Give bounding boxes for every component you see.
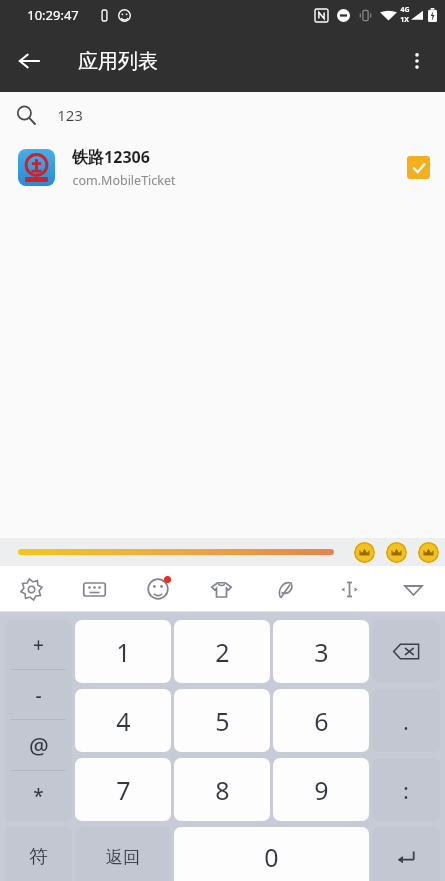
button[interactable]: 符 xyxy=(5,827,72,881)
staticText: 5 xyxy=(215,704,230,738)
staticText: @ xyxy=(29,730,49,760)
button[interactable]: Settings xyxy=(0,566,63,612)
button[interactable]: 2 xyxy=(174,620,270,683)
button[interactable]: 6 xyxy=(273,689,369,752)
button[interactable]: - xyxy=(5,670,72,719)
staticText: 4 xyxy=(116,704,131,738)
staticText: * xyxy=(33,783,44,809)
button[interactable]: + xyxy=(5,620,72,669)
button[interactable]: Reward xyxy=(418,542,439,563)
staticText: 应用列表 xyxy=(78,49,158,74)
button[interactable]: Keyboard layout xyxy=(63,566,126,612)
staticText: 6 xyxy=(314,704,329,738)
staticText: 7 xyxy=(116,773,131,807)
button[interactable]: Selected xyxy=(398,147,438,187)
staticText: 符 xyxy=(29,845,48,869)
staticText: 123 xyxy=(57,105,83,125)
button[interactable]: Enter xyxy=(372,827,440,881)
staticText: 铁路12306 xyxy=(72,146,150,168)
staticText: 2 xyxy=(215,635,230,669)
button[interactable]: 5 xyxy=(174,689,270,752)
button[interactable]: 返回 xyxy=(75,827,171,881)
button[interactable]: Hide keyboard xyxy=(381,566,445,612)
staticText: : xyxy=(403,775,409,805)
button[interactable]: 4 xyxy=(75,689,171,752)
button[interactable]: Theme xyxy=(189,566,253,612)
button[interactable]: . xyxy=(372,689,440,752)
button[interactable]: Reward xyxy=(386,542,407,563)
button[interactable]: 0 xyxy=(174,827,369,881)
button[interactable]: 3 xyxy=(273,620,369,683)
staticText: com.MobileTicket xyxy=(72,172,176,189)
button[interactable]: * xyxy=(5,771,72,821)
staticText: 1X xyxy=(400,15,409,25)
button[interactable]: Move cursor xyxy=(317,566,381,612)
button[interactable]: : xyxy=(372,758,440,821)
button[interactable]: 铁路12306 xyxy=(0,138,445,196)
button[interactable]: @ xyxy=(5,720,72,770)
staticText: . xyxy=(403,706,409,736)
staticText: 1 xyxy=(116,635,131,669)
button[interactable]: Back xyxy=(9,41,49,81)
staticText: + xyxy=(33,632,44,658)
staticText: 9 xyxy=(314,773,329,807)
staticText: - xyxy=(35,682,42,708)
button[interactable]: 9 xyxy=(273,758,369,821)
button[interactable]: 1 xyxy=(75,620,171,683)
staticText: 返回 xyxy=(106,847,140,868)
staticText: 8 xyxy=(215,773,230,807)
button[interactable]: 123 xyxy=(0,92,445,138)
button[interactable]: Backspace xyxy=(372,620,440,683)
staticText: 4G xyxy=(400,5,410,15)
button[interactable]: Reward xyxy=(354,542,375,563)
staticText: 0 xyxy=(264,840,279,874)
button[interactable]: More options xyxy=(397,41,437,81)
staticText: 10:29:47 xyxy=(27,6,79,24)
button[interactable]: Emoji xyxy=(126,566,189,612)
button[interactable]: Handwriting xyxy=(253,566,317,612)
button[interactable]: 7 xyxy=(75,758,171,821)
staticText: 3 xyxy=(314,635,329,669)
button[interactable]: 8 xyxy=(174,758,270,821)
